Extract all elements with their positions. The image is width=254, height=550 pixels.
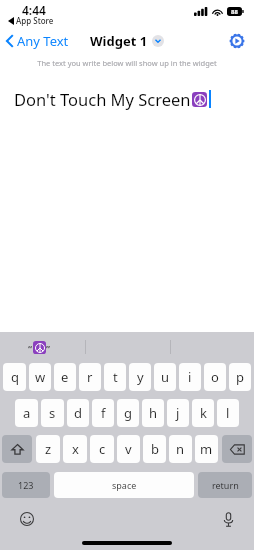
staticText: n [176,440,185,458]
button[interactable]: Any Text [0,29,77,53]
staticText: 4:44 [22,2,46,18]
staticText: x [72,440,79,458]
button[interactable]: Settings [226,30,248,52]
button[interactable]: z [36,435,60,463]
staticText: s [49,404,56,422]
button[interactable]: n [169,435,192,463]
button[interactable]: Widget 1 [86,30,168,52]
staticText: j [176,404,180,422]
button[interactable]: Don't Touch My Screen [0,84,254,114]
staticText: c [99,440,106,458]
staticText: The text you write below will show up in… [37,58,217,68]
button[interactable]: y [129,363,151,391]
staticText: o [211,368,219,386]
staticText: a [23,404,31,422]
button[interactable]: r [79,363,101,391]
button[interactable]: k [192,399,214,427]
button[interactable]: j [167,399,189,427]
button[interactable]: 123 [2,472,50,498]
button[interactable]: Shift [2,435,32,463]
button[interactable]: h [142,399,164,427]
staticText: k [200,404,207,422]
staticText: f [101,404,106,422]
button[interactable]: p [229,363,251,391]
staticText: ” [46,342,51,354]
button[interactable]: c [90,435,114,463]
staticText: g [124,404,132,422]
staticText: return [212,479,239,491]
button[interactable]: space [54,472,194,498]
button[interactable]: “ [28,341,51,354]
staticText: i [188,368,192,386]
button[interactable]: a [15,399,38,427]
staticText: z [45,440,52,458]
button[interactable]: b [143,435,166,463]
staticText: m [200,440,213,458]
button[interactable]: g [117,399,139,427]
button[interactable]: u [154,363,176,391]
button[interactable]: m [195,435,218,463]
staticText: Any Text [17,32,69,50]
button[interactable]: l [217,399,239,427]
staticText: p [236,368,244,386]
staticText: Widget 1 [90,32,148,50]
button[interactable]: o [204,363,226,391]
button[interactable]: v [117,435,140,463]
button[interactable]: t [104,363,126,391]
button[interactable]: Delete [222,435,252,463]
staticText: b [151,440,159,458]
button[interactable]: q [3,363,26,391]
staticText: 88 [231,8,238,16]
button[interactable]: e [54,363,76,391]
staticText: h [149,404,158,422]
button[interactable]: d [67,399,89,427]
button[interactable]: x [63,435,87,463]
staticText: t [113,368,118,386]
staticText: w [35,368,46,386]
button[interactable]: return [198,472,252,498]
staticText: l [226,404,230,422]
button[interactable]: i [179,363,201,391]
staticText: “ [28,342,33,354]
staticText: Don't Touch My Screen [14,88,191,110]
staticText: App Store [16,15,54,26]
staticText: e [61,368,69,386]
button[interactable]: Emoji keyboard [18,510,36,528]
staticText: 123 [18,479,34,491]
staticText: q [11,368,19,386]
button[interactable]: s [41,399,64,427]
staticText: v [125,440,132,458]
button[interactable]: Dictation [221,510,236,529]
button[interactable]: w [29,363,51,391]
button[interactable]: f [92,399,114,427]
staticText: d [74,404,82,422]
staticText: r [87,368,93,386]
staticText: space [112,479,137,491]
staticText: u [161,368,170,386]
staticText: y [137,368,144,386]
